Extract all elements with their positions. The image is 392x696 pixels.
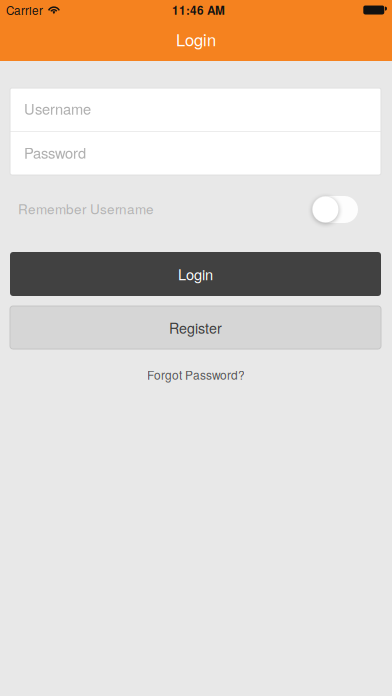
textField[interactable]: Username xyxy=(10,88,381,131)
staticText: Remember Username xyxy=(18,199,154,218)
button[interactable]: Register xyxy=(10,306,381,349)
staticText: Login xyxy=(178,263,213,284)
button[interactable]: Remember Username xyxy=(312,196,358,223)
secureTextField[interactable]: Password xyxy=(10,132,381,175)
staticText: Password xyxy=(24,142,86,163)
staticText: Username xyxy=(24,98,91,119)
staticText: Forgot Password? xyxy=(147,366,245,383)
button[interactable]: Forgot Password? xyxy=(133,358,259,391)
staticText: Login xyxy=(176,27,216,51)
button[interactable]: Login xyxy=(10,252,381,296)
staticText: 11:46 AM xyxy=(172,2,225,18)
staticText: Register xyxy=(169,317,222,338)
staticText: Carrier xyxy=(6,2,43,18)
